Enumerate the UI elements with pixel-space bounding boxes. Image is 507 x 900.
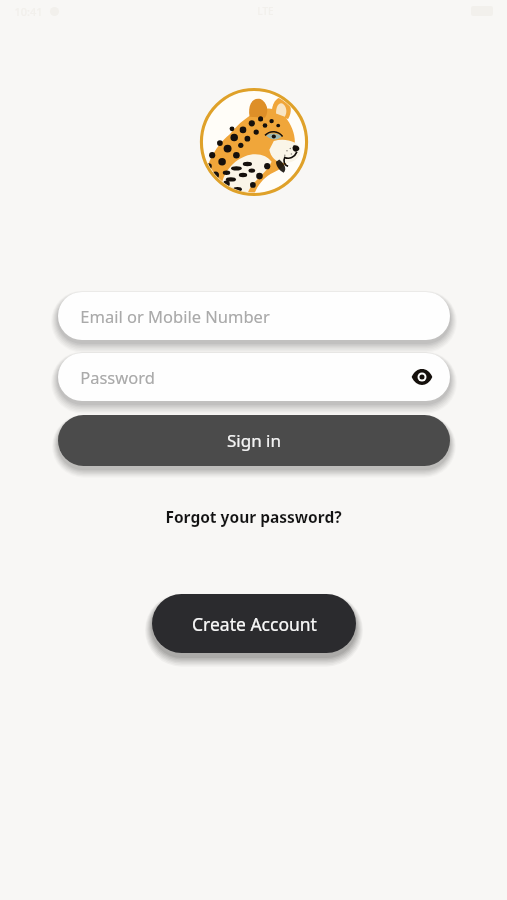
staticText: LTE [257,4,274,18]
staticText: Sign in [227,429,281,452]
staticText: Password [80,366,155,388]
button[interactable]: Sign in [58,415,450,466]
staticText: Email or Mobile Number [80,305,270,327]
button[interactable]: Forgot your password? [0,500,507,532]
staticText: Create Account [192,612,317,636]
button[interactable]: Create Account [152,594,356,653]
staticText: Forgot your password? [165,506,342,527]
button[interactable]: Show password [402,357,442,397]
button[interactable]: Email or Mobile Number [58,292,450,340]
button[interactable]: Password [58,353,450,401]
staticText: 10:41 [14,4,43,19]
